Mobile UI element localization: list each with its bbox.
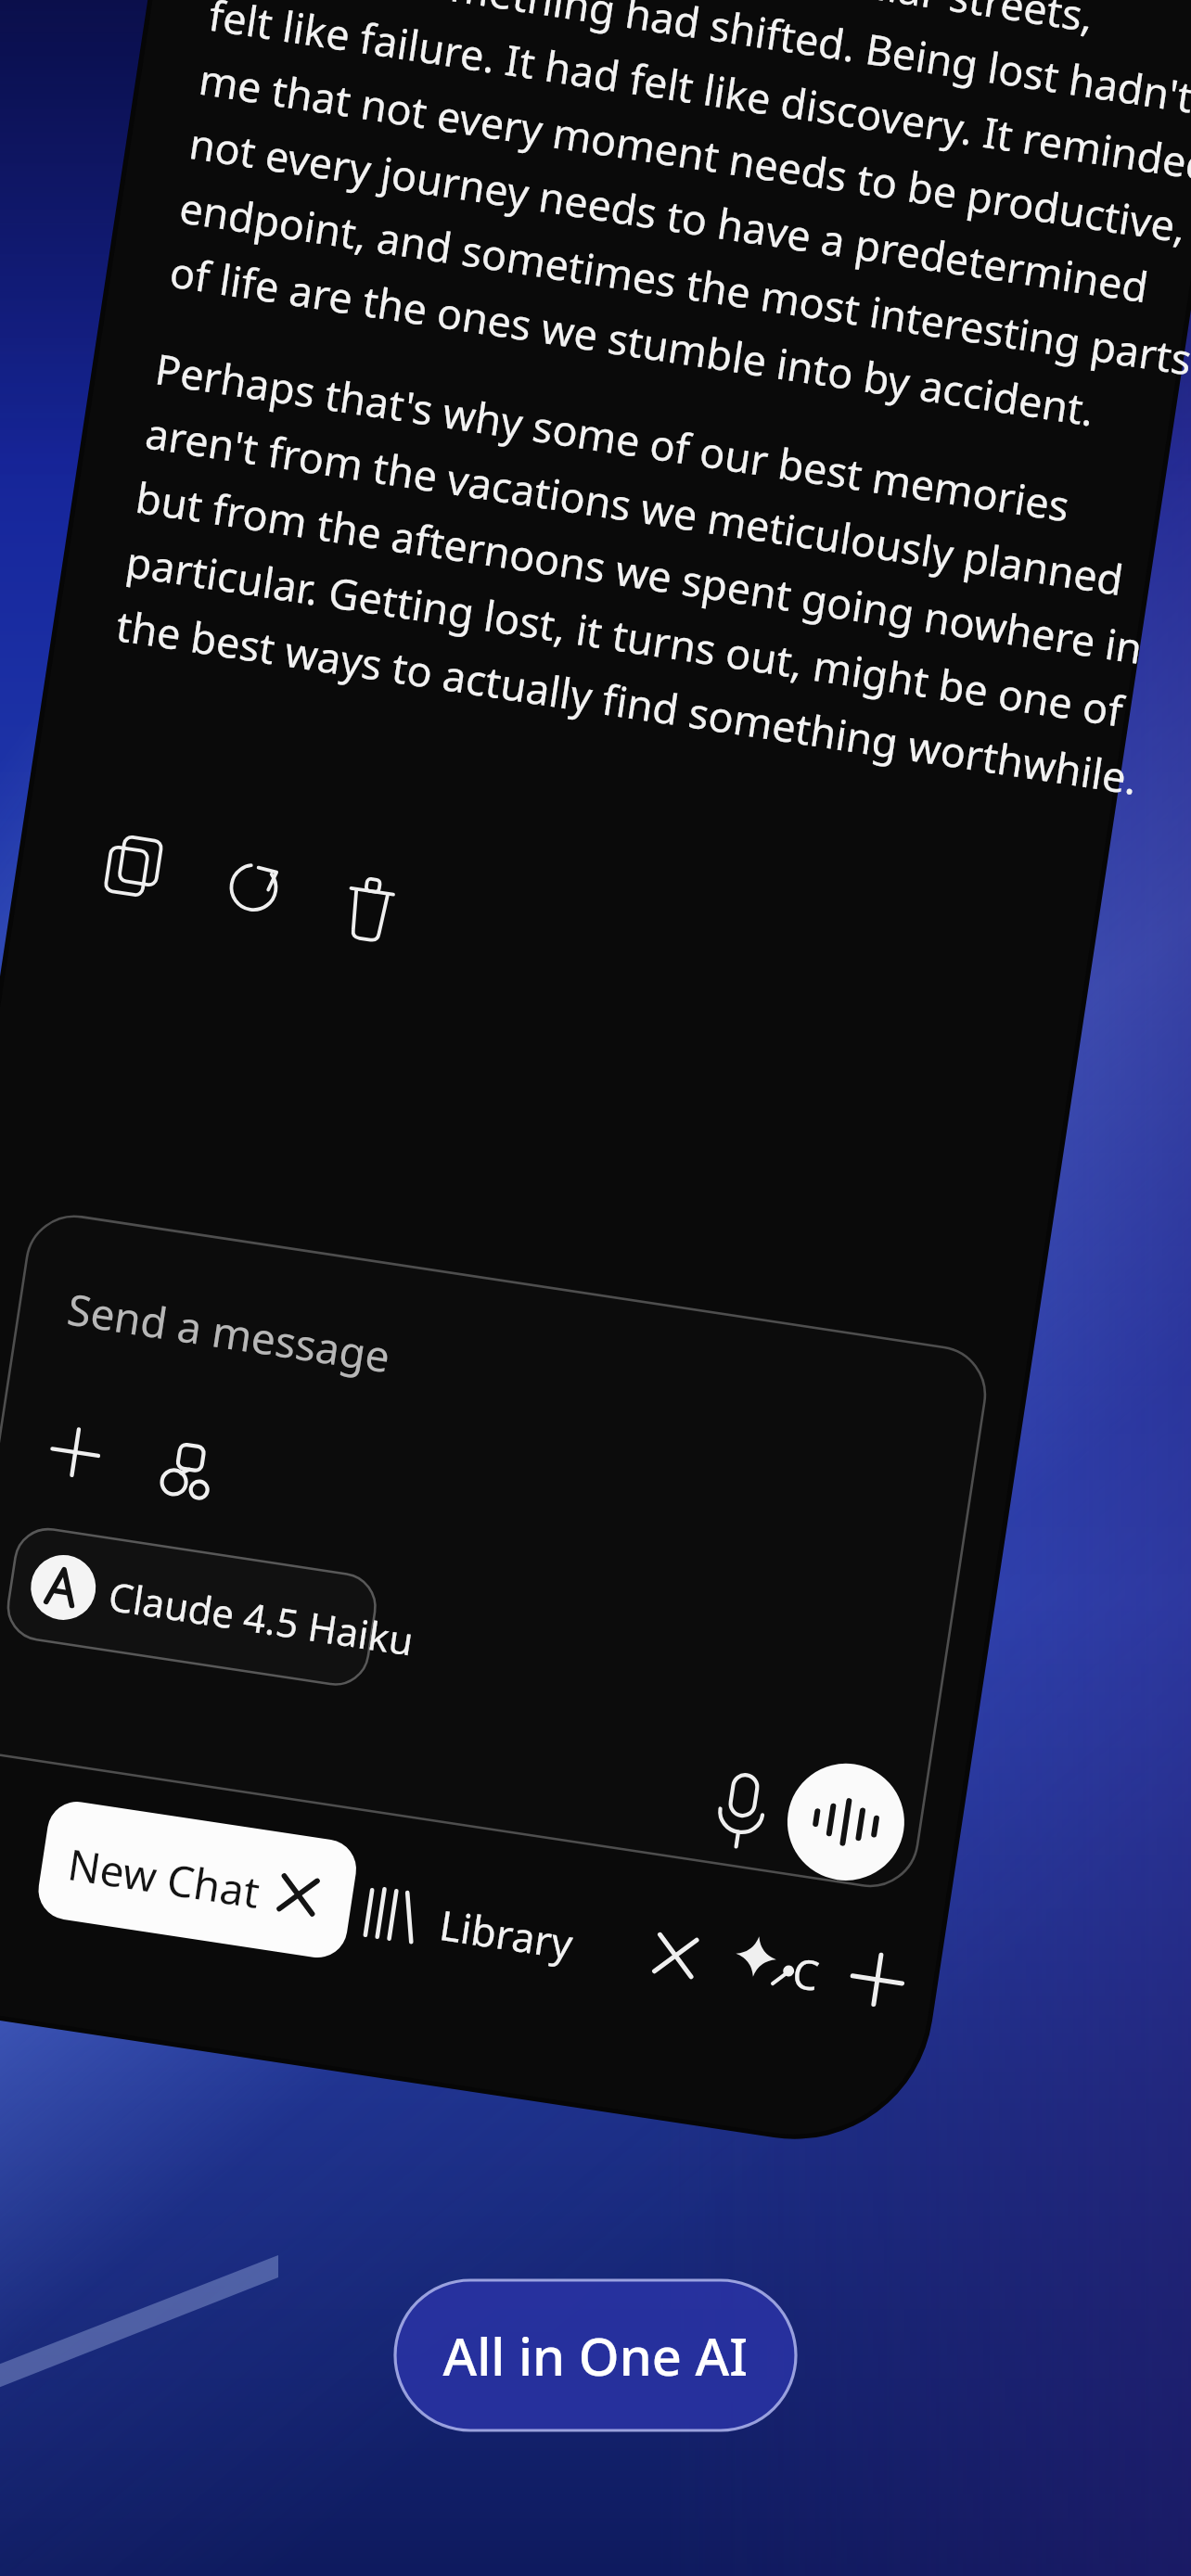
button[interactable]: Home: [111, 1869, 204, 1983]
button[interactable]: Regenerate: [246, 891, 340, 999]
button[interactable]: Library: [543, 1891, 775, 2009]
button[interactable]: Copy: [124, 881, 219, 988]
button[interactable]: Voice mode: [974, 1720, 1085, 1880]
button[interactable]: Send a message: [119, 1275, 1089, 1597]
button[interactable]: Claude 4.5 Haiku model: [148, 1638, 535, 1781]
button[interactable]: All in One AI: [395, 2300, 800, 2454]
button[interactable]: Close: [826, 1906, 900, 2013]
button[interactable]: Microphone: [878, 1726, 956, 1843]
button[interactable]: New Chat: [221, 1859, 548, 1993]
button[interactable]: Assistant: [909, 1916, 1002, 2034]
button[interactable]: Add attachment: [152, 1504, 237, 1612]
button[interactable]: Tools: [248, 1511, 333, 1619]
button[interactable]: Delete: [366, 901, 461, 1009]
